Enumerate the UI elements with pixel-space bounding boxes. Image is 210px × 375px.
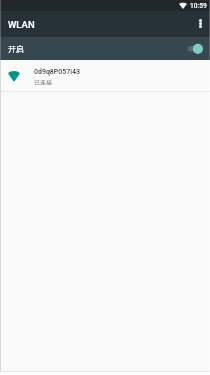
button[interactable]: More options <box>191 11 210 37</box>
button[interactable]: 开启 <box>0 37 210 60</box>
button[interactable]: 0d9q8P057i43 <box>0 60 210 91</box>
staticText: WLAN <box>8 19 35 30</box>
staticText: 0d9q8P057i43 <box>34 68 80 76</box>
staticText: 10:59 <box>190 2 207 10</box>
staticText: 开启 <box>8 43 24 55</box>
staticText: 已连接 <box>34 78 53 87</box>
